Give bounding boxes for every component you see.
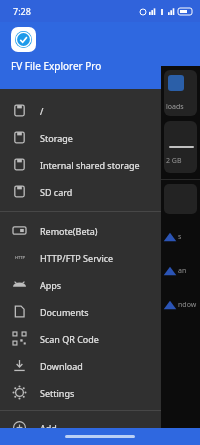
- button[interactable]: Apps: [0, 271, 161, 298]
- staticText: Storage: [40, 132, 73, 144]
- staticText: Documents: [40, 306, 89, 318]
- staticText: SD card: [40, 186, 73, 198]
- staticText: Remote(Beta): [40, 225, 98, 237]
- staticText: Add: [40, 422, 57, 434]
- staticText: Scan QR Code: [40, 333, 99, 345]
- staticText: Settings: [40, 387, 75, 399]
- button[interactable]: HTTP: [0, 244, 161, 271]
- staticText: ndow: [178, 300, 197, 310]
- staticText: HTTP: [15, 255, 25, 260]
- staticText: HTTP/FTP Service: [40, 252, 114, 264]
- button[interactable]: Documents: [0, 298, 161, 325]
- staticText: Internal shared storage: [40, 159, 140, 171]
- button[interactable]: Add: [0, 414, 161, 441]
- button[interactable]: Scan QR Code: [0, 325, 161, 352]
- button[interactable]: Settings: [0, 379, 161, 406]
- button[interactable]: Internal shared storage: [0, 151, 161, 178]
- staticText: /: [40, 105, 44, 117]
- staticText: loads: [166, 102, 184, 112]
- staticText: Apps: [40, 279, 62, 291]
- button[interactable]: /: [0, 97, 161, 124]
- staticText: FV File Explorer Pro: [11, 59, 102, 73]
- button[interactable]: Remote(Beta): [0, 217, 161, 244]
- staticText: 7:28: [13, 5, 31, 17]
- button[interactable]: Download: [0, 352, 161, 379]
- staticText: 2 GB: [166, 156, 182, 166]
- staticText: an: [178, 266, 187, 276]
- staticText: s: [178, 232, 182, 242]
- button[interactable]: Storage: [0, 124, 161, 151]
- button[interactable]: SD card: [0, 178, 161, 205]
- staticText: Download: [40, 360, 83, 372]
